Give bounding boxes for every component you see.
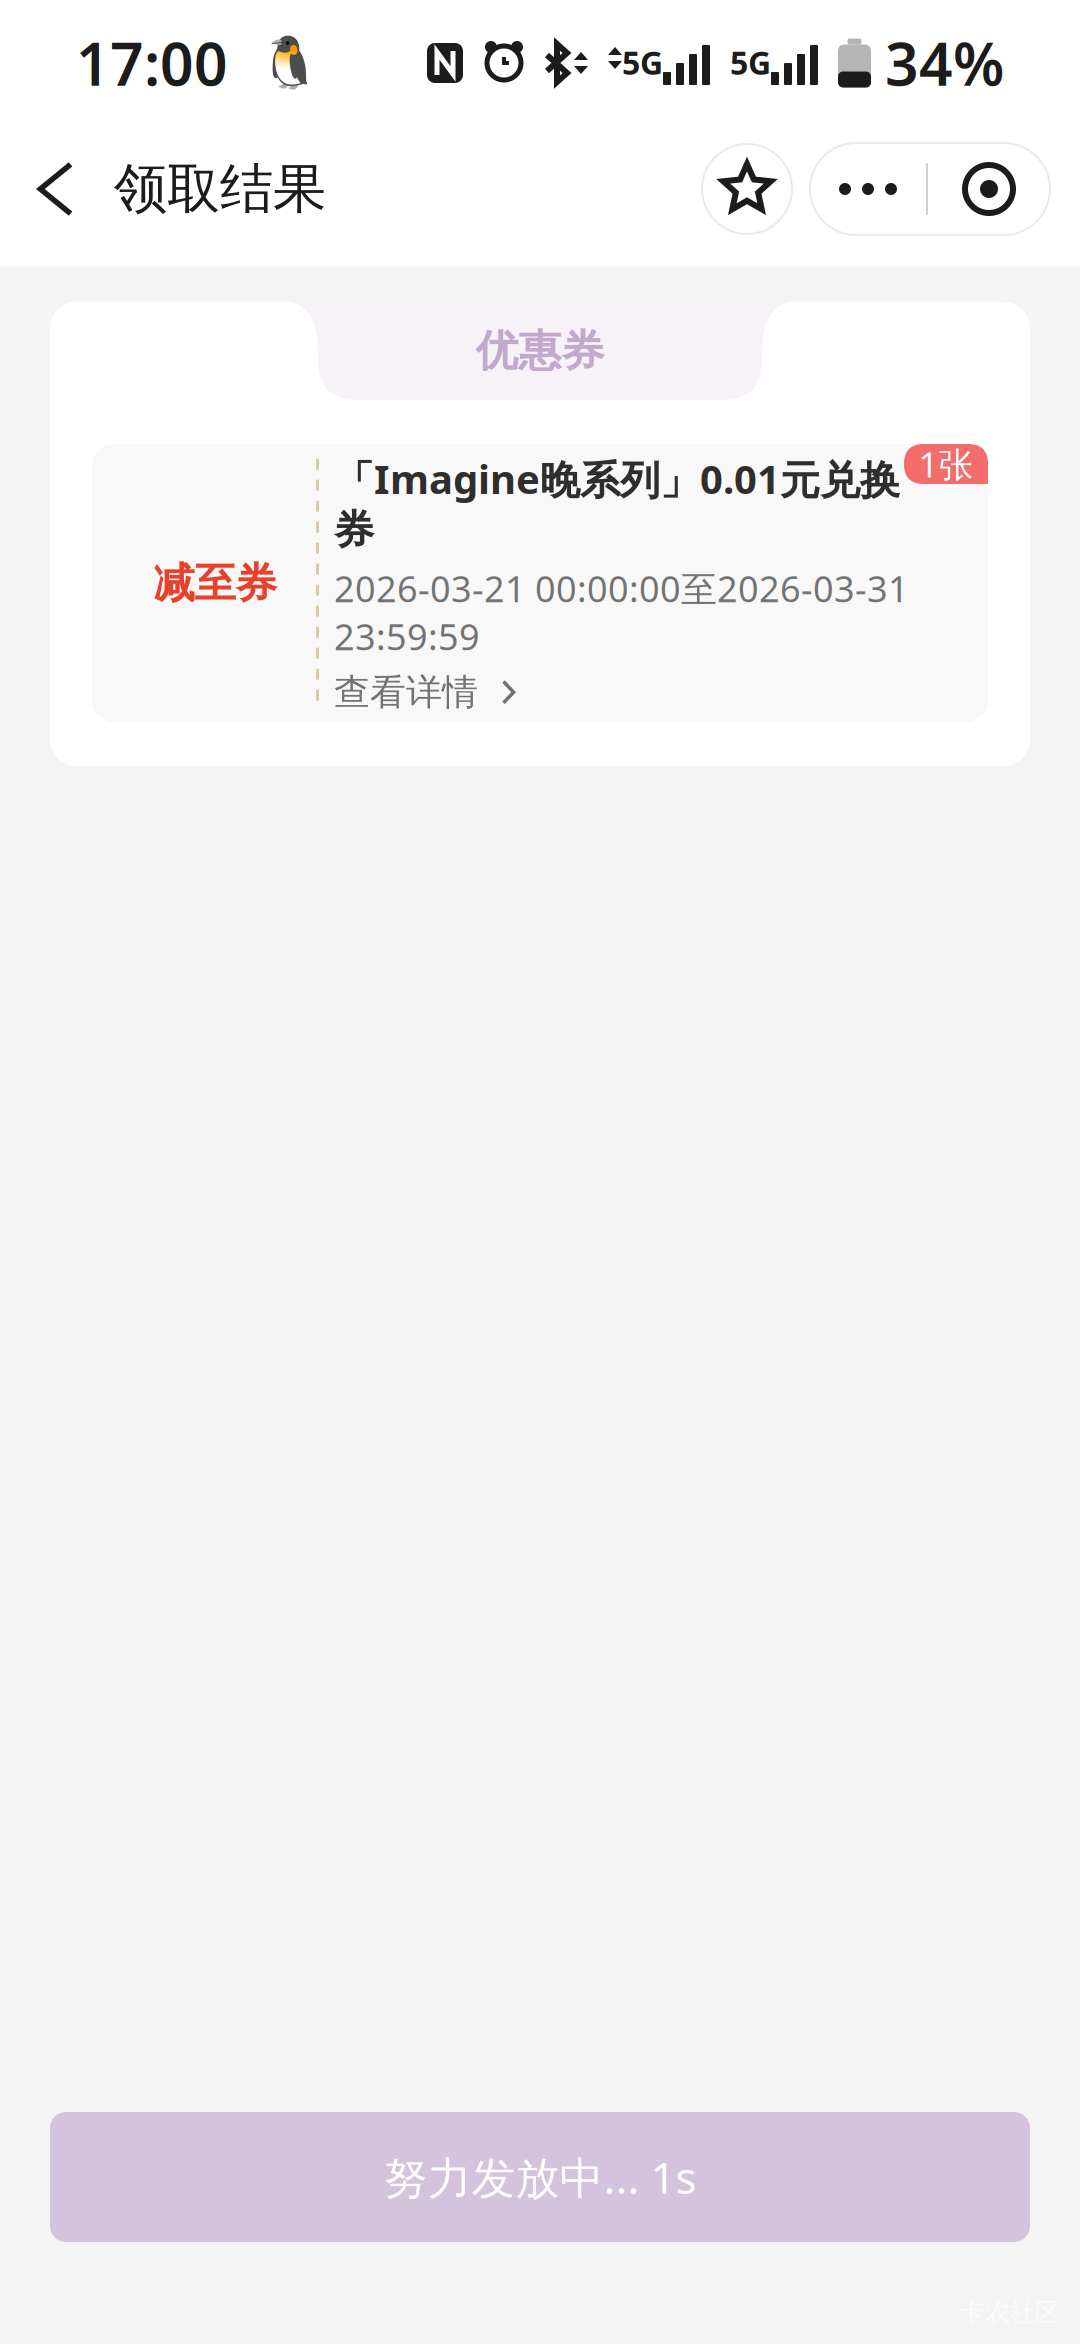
staticText: 减至券 bbox=[153, 558, 276, 609]
staticText: 17:00 bbox=[76, 24, 228, 102]
staticText: 🐧 bbox=[258, 34, 321, 92]
staticText: 优惠券 bbox=[475, 325, 604, 377]
staticText: 5G bbox=[622, 41, 663, 83]
button[interactable]: Back bbox=[0, 126, 114, 252]
staticText: 5G bbox=[730, 41, 771, 83]
staticText: 查看详情 bbox=[334, 670, 478, 714]
staticText: 「Imagine晚系列」0.01元兑换券 bbox=[334, 452, 900, 554]
staticText: 1张 bbox=[918, 441, 973, 487]
button[interactable]: Favorite bbox=[702, 144, 792, 234]
staticText: 领取结果 bbox=[114, 156, 326, 222]
button[interactable]: More bbox=[810, 143, 1050, 235]
staticText: 努力发放中... 1s bbox=[383, 2148, 696, 2206]
button[interactable]: 努力发放中... 1s bbox=[50, 2112, 1030, 2242]
staticText: 34% bbox=[885, 24, 1004, 102]
button[interactable]: 查看详情 bbox=[334, 670, 522, 714]
staticText: 2026-03-21 00:00:00至2026-03-31 23:59:59 bbox=[334, 564, 909, 660]
